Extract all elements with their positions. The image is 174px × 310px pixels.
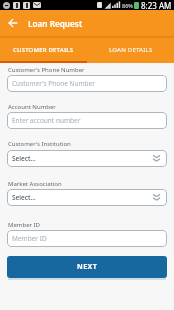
button[interactable]: Select... — [7, 150, 167, 167]
staticText: Select... — [12, 193, 36, 202]
button[interactable]: Customer's Phone Number — [7, 75, 167, 92]
staticText: Member ID — [12, 234, 47, 243]
staticText: 86% — [122, 2, 133, 9]
button[interactable]: Enter account number — [7, 112, 167, 129]
button[interactable]: CUSTOMER DETAILS — [0, 36, 87, 63]
staticText: NEXT — [77, 262, 98, 272]
button[interactable]: NEXT — [7, 256, 167, 278]
staticText: Market Association — [8, 180, 62, 187]
staticText: Customer's Phone Number — [8, 66, 85, 73]
staticText: Account Number — [8, 103, 56, 110]
staticText: Enter account number — [12, 116, 81, 125]
staticText: Loan Request — [28, 18, 83, 29]
staticText: 8:23 AM — [141, 0, 172, 10]
button[interactable] — [0, 10, 26, 36]
staticText: Customer's Institution — [8, 140, 71, 147]
staticText: LOAN DETAILS — [109, 46, 153, 54]
staticText: Member ID — [8, 221, 40, 228]
button[interactable]: Select... — [7, 189, 167, 206]
staticText: Customer's Phone Number — [12, 79, 95, 88]
staticText: CUSTOMER DETAILS — [13, 46, 74, 54]
button[interactable]: LOAN DETAILS — [87, 36, 174, 63]
button[interactable]: Member ID — [7, 230, 167, 247]
staticText: Select... — [12, 154, 36, 163]
